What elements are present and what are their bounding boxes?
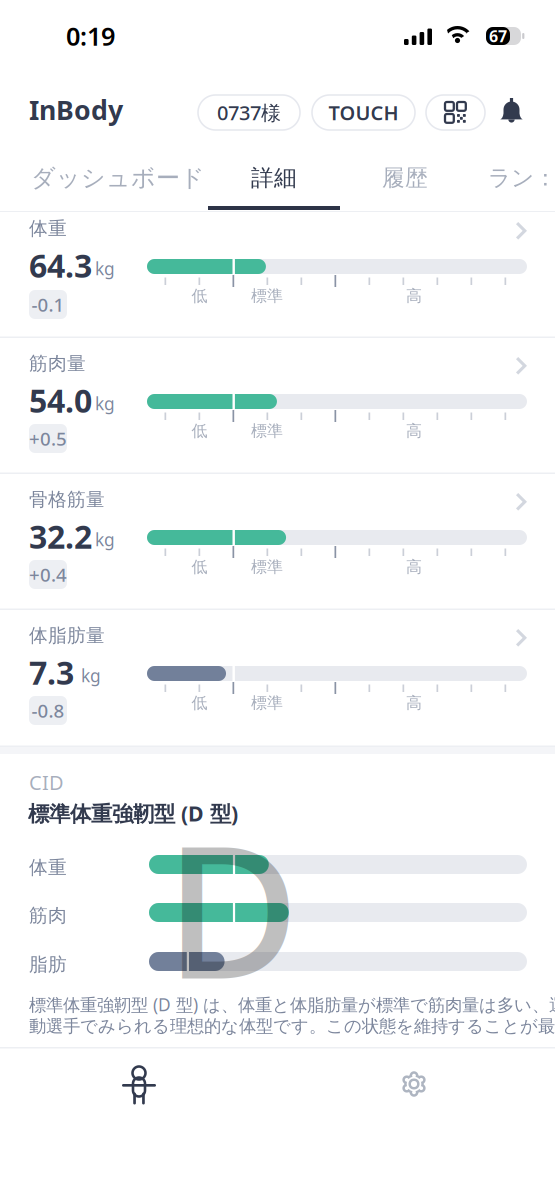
staticText: 高 bbox=[406, 693, 422, 713]
staticText: 標準体重強靭型 (D 型) は、体重と体脂肪量が標準で筋肉量は多い、運 bbox=[29, 993, 555, 1016]
staticText: -0.8 bbox=[31, 698, 64, 723]
button[interactable]: Settings bbox=[354, 1056, 474, 1112]
button[interactable]: 詳細 bbox=[208, 154, 340, 214]
staticText: 筋肉量 bbox=[29, 352, 86, 375]
staticText: 脂肪 bbox=[29, 953, 67, 976]
staticText: 32.2 bbox=[29, 515, 92, 557]
button[interactable]: 体脂肪量 bbox=[0, 0, 555, 1200]
staticText: D bbox=[165, 785, 300, 1029]
staticText: -0.1 bbox=[31, 292, 64, 317]
staticText: 64.3 bbox=[29, 244, 92, 286]
staticText: kg bbox=[81, 664, 101, 687]
staticText: TOUCH bbox=[328, 99, 398, 126]
staticText: +0.4 bbox=[29, 562, 67, 587]
staticText: 標準 bbox=[251, 286, 283, 306]
button[interactable]: TOUCH bbox=[312, 95, 415, 130]
staticText: +0.5 bbox=[29, 426, 67, 451]
staticText: 7.3 bbox=[29, 651, 74, 693]
staticText: 標準 bbox=[251, 557, 283, 577]
staticText: CID bbox=[29, 769, 64, 796]
staticText: kg bbox=[95, 257, 115, 280]
staticText: kg bbox=[95, 528, 115, 551]
staticText: 高 bbox=[406, 421, 422, 441]
staticText: 低 bbox=[191, 557, 207, 577]
staticText: 骨格筋量 bbox=[29, 488, 105, 511]
staticText: 0:19 bbox=[66, 19, 115, 53]
button[interactable]: 履歴 bbox=[367, 154, 443, 202]
button[interactable]: QR code bbox=[426, 95, 485, 130]
staticText: 0737様 bbox=[217, 99, 281, 126]
button[interactable]: ラン： bbox=[488, 154, 555, 202]
staticText: 高 bbox=[406, 557, 422, 577]
staticText: 動選手でみられる理想的な体型です。この状態を維持することが最… bbox=[29, 1014, 555, 1037]
staticText: 67 bbox=[489, 25, 507, 47]
staticText: 低 bbox=[191, 286, 207, 306]
staticText: 54.0 bbox=[29, 379, 92, 421]
staticText: ダッシュボード bbox=[31, 163, 205, 193]
staticText: ラン： bbox=[488, 164, 555, 192]
button[interactable]: 筋肉量 bbox=[0, 0, 555, 1200]
button[interactable]: ダッシュボード bbox=[28, 154, 208, 202]
staticText: 体重 bbox=[29, 856, 67, 879]
staticText: 履歴 bbox=[382, 164, 428, 192]
staticText: 低 bbox=[191, 693, 207, 713]
staticText: InBody bbox=[29, 92, 123, 127]
staticText: 標準 bbox=[251, 693, 283, 713]
button[interactable]: Notifications bbox=[499, 98, 524, 125]
staticText: kg bbox=[95, 392, 115, 415]
button[interactable]: Body bbox=[79, 1056, 199, 1112]
staticText: 体重 bbox=[29, 217, 67, 240]
staticText: 詳細 bbox=[251, 164, 297, 192]
staticText: 標準 bbox=[251, 421, 283, 441]
button[interactable]: 骨格筋量 bbox=[0, 0, 555, 1200]
button[interactable]: 体重 bbox=[0, 0, 555, 1200]
staticText: 低 bbox=[191, 421, 207, 441]
staticText: 標準体重強靭型 (D 型) bbox=[28, 799, 238, 827]
staticText: 体脂肪量 bbox=[29, 624, 105, 647]
staticText: 筋肉 bbox=[29, 904, 67, 927]
button[interactable]: 0737様 bbox=[198, 95, 300, 130]
staticText: 高 bbox=[406, 286, 422, 306]
